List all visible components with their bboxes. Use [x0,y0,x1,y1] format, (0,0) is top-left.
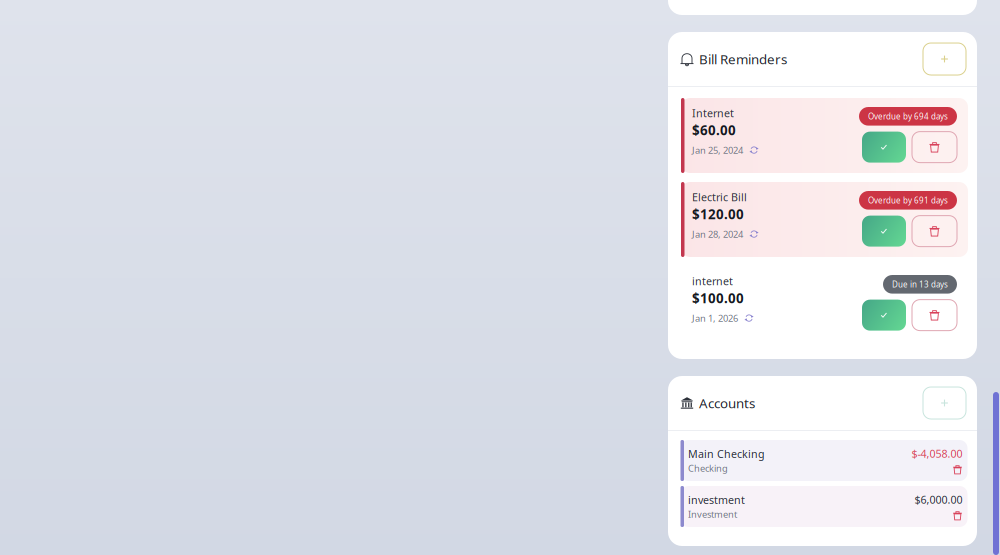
staticText: Bill Reminders [699,50,787,68]
staticText: Accounts [699,394,755,412]
staticText: Jan 1, 2026 [692,312,738,324]
button[interactable]: Main Checking [680,440,967,481]
button[interactable]: investment [680,486,967,527]
button[interactable]: Delete bill [912,216,957,247]
staticText: $100.00 [692,289,744,307]
staticText: Main Checking [688,447,765,461]
staticText: Electric Bill [692,190,747,204]
staticText: Checking [688,462,728,474]
staticText: Overdue by 691 days [868,195,948,206]
button[interactable]: Mark as paid [862,300,906,331]
staticText: Due in 13 days [892,279,948,290]
button[interactable]: Mark as paid [862,132,906,163]
staticText: Overdue by 694 days [868,111,948,122]
button[interactable]: Add bill reminder [923,43,966,75]
staticText: internet [692,274,733,288]
staticText: $60.00 [692,121,736,139]
staticText: Internet [692,106,734,120]
staticText: Jan 25, 2024 [692,144,743,156]
staticText: $-4,058.00 [911,446,962,461]
button[interactable]: Delete bill [912,300,957,331]
staticText: Investment [688,508,737,520]
button[interactable]: Mark as paid [862,216,906,247]
staticText: $6,000.00 [914,492,962,507]
button[interactable]: Delete bill [912,132,957,163]
staticText: investment [688,493,745,507]
staticText: $120.00 [692,205,744,223]
staticText: Jan 28, 2024 [692,228,743,240]
button[interactable]: Add account [923,387,966,419]
